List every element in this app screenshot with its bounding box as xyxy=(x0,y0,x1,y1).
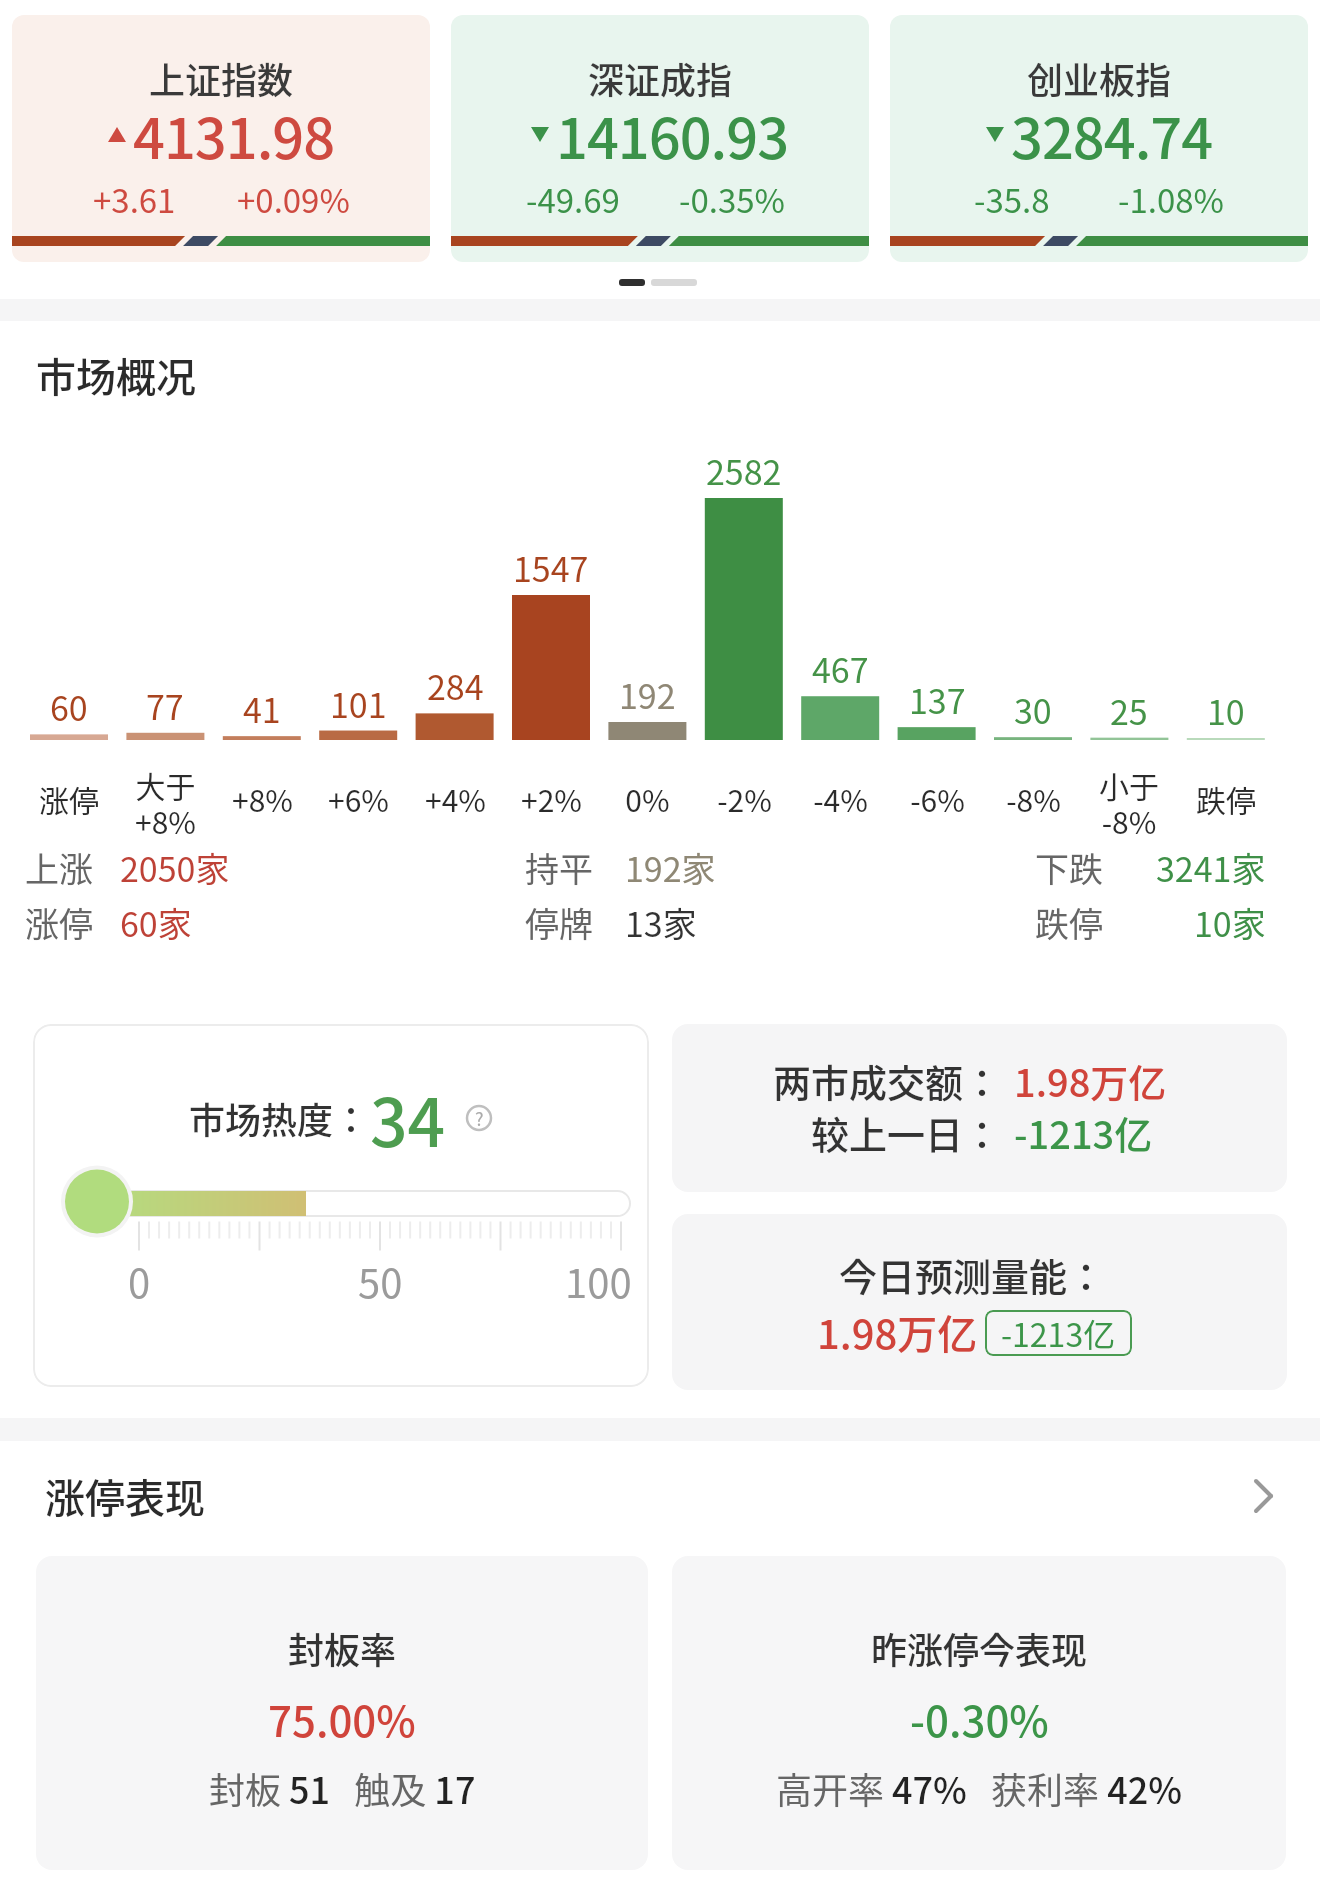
staticText: 持平 xyxy=(525,843,593,892)
button[interactable]: 今日预测量能： xyxy=(672,1214,1287,1390)
button[interactable]: 昨涨停今表现 xyxy=(672,1556,1286,1870)
button[interactable]: 上证指数 xyxy=(12,15,430,262)
staticText: +0.09% xyxy=(237,175,350,223)
staticText: -8% xyxy=(1006,777,1061,820)
staticText: 10 xyxy=(1207,686,1245,735)
staticText: 0 xyxy=(128,1252,151,1310)
staticText: 跌停 xyxy=(1035,898,1103,947)
staticText: -0.35% xyxy=(679,175,785,223)
staticText: 上涨 xyxy=(25,843,93,892)
staticText: 14160.93 xyxy=(556,94,789,175)
staticText: ? xyxy=(475,1105,484,1131)
button[interactable]: 两市成交额： xyxy=(672,1024,1287,1192)
staticText: 创业板指 xyxy=(1027,52,1172,104)
staticText: 50 xyxy=(358,1252,403,1310)
staticText: 较上一日： xyxy=(811,1105,1002,1160)
staticText: 101 xyxy=(330,679,387,728)
staticText: 77 xyxy=(146,681,184,730)
staticText: 25 xyxy=(1110,686,1148,735)
staticText: 两市成交额： xyxy=(773,1053,1002,1108)
staticText: 284 xyxy=(427,661,484,710)
staticText: 涨停 xyxy=(25,898,93,947)
staticText: 0% xyxy=(625,777,670,820)
staticText: 昨涨停今表现 xyxy=(871,1622,1088,1674)
staticText: 封板 51 触及 17 xyxy=(209,1762,476,1814)
staticText: 100 xyxy=(565,1252,632,1310)
staticText: 1547 xyxy=(513,543,589,592)
staticText: 涨停表现 xyxy=(45,1467,205,1525)
staticText: -0.30% xyxy=(910,1688,1049,1749)
staticText: 今日预测量能： xyxy=(839,1247,1106,1302)
staticText: 467 xyxy=(812,644,869,693)
staticText: 60家 xyxy=(120,898,192,947)
staticText: 2050家 xyxy=(120,843,230,892)
staticText: 3284.74 xyxy=(1011,94,1213,175)
button[interactable]: 创业板指 xyxy=(890,15,1308,262)
staticText: 下跌 xyxy=(1035,843,1103,892)
staticText: 10家 xyxy=(1194,898,1266,947)
staticText: 1.98万亿 xyxy=(817,1303,978,1361)
staticText: 41 xyxy=(243,684,281,733)
button[interactable]: ? xyxy=(464,1103,494,1133)
staticText: 192 xyxy=(619,670,676,719)
staticText: 192家 xyxy=(625,843,716,892)
staticText: 34 xyxy=(370,1070,446,1166)
staticText: 封板率 xyxy=(288,1622,397,1674)
staticText: 上证指数 xyxy=(149,52,294,104)
staticText: 13家 xyxy=(625,898,697,947)
staticText: 跌停 xyxy=(1196,777,1256,820)
staticText: 75.00% xyxy=(268,1688,416,1749)
staticText: +4% xyxy=(425,777,486,820)
staticText: -35.8 xyxy=(974,175,1050,223)
staticText: 市场热度： xyxy=(189,1092,370,1144)
staticText: 30 xyxy=(1014,685,1052,734)
staticText: -1213亿 xyxy=(1014,1105,1153,1160)
staticText: 小于 -8% xyxy=(1099,763,1159,842)
staticText: 4131.98 xyxy=(133,94,335,175)
button[interactable]: 市场热度： xyxy=(33,1024,649,1387)
staticText: -49.69 xyxy=(526,175,620,223)
staticText: 3241家 xyxy=(1156,843,1266,892)
staticText: -6% xyxy=(910,777,965,820)
staticText: +3.61 xyxy=(93,175,176,223)
staticText: 高开率 47% 获利率 42% xyxy=(776,1762,1183,1814)
staticText: 涨停 xyxy=(39,777,99,820)
staticText: 1.98万亿 xyxy=(1014,1053,1167,1108)
staticText: 137 xyxy=(909,675,966,724)
staticText: 大于 +8% xyxy=(135,763,196,842)
button[interactable]: 封板率 xyxy=(36,1556,648,1870)
staticText: +2% xyxy=(521,777,582,820)
button[interactable]: 深证成指 xyxy=(451,15,869,262)
staticText: +6% xyxy=(328,777,389,820)
staticText: -1.08% xyxy=(1118,175,1224,223)
staticText: 2582 xyxy=(706,446,782,495)
staticText: -4% xyxy=(813,777,868,820)
staticText: 停牌 xyxy=(525,898,593,947)
staticText: 深证成指 xyxy=(588,52,733,104)
staticText: 市场概况 xyxy=(36,346,196,404)
button[interactable]: 涨停表现 xyxy=(0,1462,1320,1532)
staticText: -1213亿 xyxy=(1001,1310,1116,1356)
staticText: +8% xyxy=(232,777,293,820)
staticText: -2% xyxy=(717,777,772,820)
staticText: 60 xyxy=(50,682,88,731)
